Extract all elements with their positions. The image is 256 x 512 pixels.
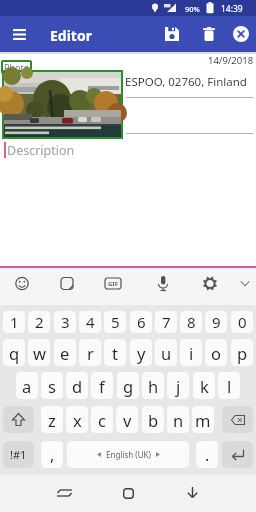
staticText: q xyxy=(9,342,20,364)
staticText: d xyxy=(72,375,83,397)
staticText: 5 xyxy=(111,312,120,332)
button[interactable]: 7 xyxy=(155,311,177,333)
staticText: m xyxy=(195,409,211,431)
staticText: b xyxy=(148,409,159,431)
staticText: y xyxy=(137,342,146,364)
button[interactable]: g xyxy=(117,372,139,399)
button[interactable]: !#1 xyxy=(3,441,34,468)
button[interactable]: z xyxy=(41,406,63,433)
button[interactable]: o xyxy=(205,339,227,366)
staticText: k xyxy=(200,375,209,397)
button[interactable] xyxy=(195,20,223,48)
button[interactable] xyxy=(222,406,253,433)
staticText: l xyxy=(227,375,232,397)
button[interactable]: c xyxy=(91,406,113,433)
button[interactable]: 1 xyxy=(3,311,25,333)
button[interactable] xyxy=(100,270,126,300)
button[interactable]: . xyxy=(196,441,218,468)
button[interactable]: 8 xyxy=(180,311,202,333)
staticText: 6 xyxy=(137,312,146,332)
staticText: 90% xyxy=(185,4,200,14)
button[interactable]: 2 xyxy=(28,311,50,333)
button[interactable] xyxy=(9,270,35,300)
button[interactable]: x xyxy=(66,406,88,433)
button[interactable]: English (UK) xyxy=(67,441,189,468)
button[interactable]: v xyxy=(116,406,138,433)
button[interactable]: p xyxy=(231,339,253,366)
staticText: o xyxy=(211,342,221,364)
staticText: 8 xyxy=(187,312,196,332)
button[interactable]: e xyxy=(54,339,76,366)
staticText: Photo xyxy=(4,61,30,73)
button[interactable]: n xyxy=(167,406,189,433)
staticText: p xyxy=(237,342,248,364)
button[interactable]: h xyxy=(142,372,164,399)
button[interactable]: 0 xyxy=(231,311,253,333)
staticText: s xyxy=(48,375,56,397)
staticText: v xyxy=(123,409,132,431)
button[interactable]: m xyxy=(192,406,214,433)
staticText: h xyxy=(148,375,159,397)
staticText: n xyxy=(173,409,184,431)
button[interactable]: 4 xyxy=(79,311,101,333)
button[interactable]: w xyxy=(28,339,50,366)
button[interactable] xyxy=(48,477,80,509)
button[interactable]: 3 xyxy=(54,311,76,333)
staticText: Description xyxy=(7,142,75,159)
button[interactable]: d xyxy=(66,372,88,399)
staticText: 3 xyxy=(61,312,70,332)
staticText: 14:39 xyxy=(221,3,243,15)
staticText: f xyxy=(99,375,105,397)
staticText: t xyxy=(112,342,118,364)
button[interactable]: u xyxy=(155,339,177,366)
staticText: Editor xyxy=(50,26,92,45)
button[interactable]: k xyxy=(193,372,215,399)
staticText: 0 xyxy=(238,312,247,332)
button[interactable] xyxy=(3,406,34,433)
button[interactable] xyxy=(222,441,253,468)
staticText: GIF xyxy=(108,280,118,288)
staticText: j xyxy=(176,375,181,397)
button[interactable]: b xyxy=(142,406,164,433)
button[interactable]: 6 xyxy=(130,311,152,333)
staticText: x xyxy=(73,409,82,431)
button[interactable]: t xyxy=(104,339,126,366)
staticText: 7 xyxy=(162,312,171,332)
button[interactable] xyxy=(150,270,176,300)
staticText: 1 xyxy=(10,312,19,332)
staticText: , xyxy=(50,444,55,466)
staticText: w xyxy=(33,342,46,364)
button[interactable] xyxy=(158,20,186,48)
staticText: c xyxy=(98,409,106,431)
staticText: u xyxy=(161,342,172,364)
button[interactable] xyxy=(54,270,80,300)
staticText: 4 xyxy=(86,312,95,332)
button[interactable]: 9 xyxy=(205,311,227,333)
button[interactable]: l xyxy=(218,372,240,399)
button[interactable]: r xyxy=(79,339,101,366)
button[interactable]: s xyxy=(41,372,63,399)
staticText: ESPOO, 02760, Finland xyxy=(125,74,247,90)
button[interactable]: 5 xyxy=(104,311,126,333)
button[interactable] xyxy=(227,20,255,48)
button[interactable] xyxy=(197,270,223,300)
button[interactable]: a xyxy=(16,372,38,399)
staticText: a xyxy=(22,375,32,397)
staticText: !#1 xyxy=(10,447,27,462)
staticText: 9 xyxy=(212,312,221,332)
staticText: z xyxy=(48,409,56,431)
button[interactable]: f xyxy=(91,372,113,399)
staticText: r xyxy=(87,342,94,364)
button[interactable]: q xyxy=(3,339,25,366)
button[interactable]: y xyxy=(130,339,152,366)
button[interactable] xyxy=(2,70,123,139)
button[interactable]: j xyxy=(167,372,189,399)
button[interactable]: , xyxy=(41,441,63,468)
button[interactable] xyxy=(112,477,144,509)
staticText: i xyxy=(189,342,194,364)
button[interactable]: i xyxy=(180,339,202,366)
staticText: English (UK) xyxy=(106,449,151,460)
button[interactable] xyxy=(176,477,208,509)
staticText: e xyxy=(60,342,70,364)
button[interactable] xyxy=(7,22,31,46)
